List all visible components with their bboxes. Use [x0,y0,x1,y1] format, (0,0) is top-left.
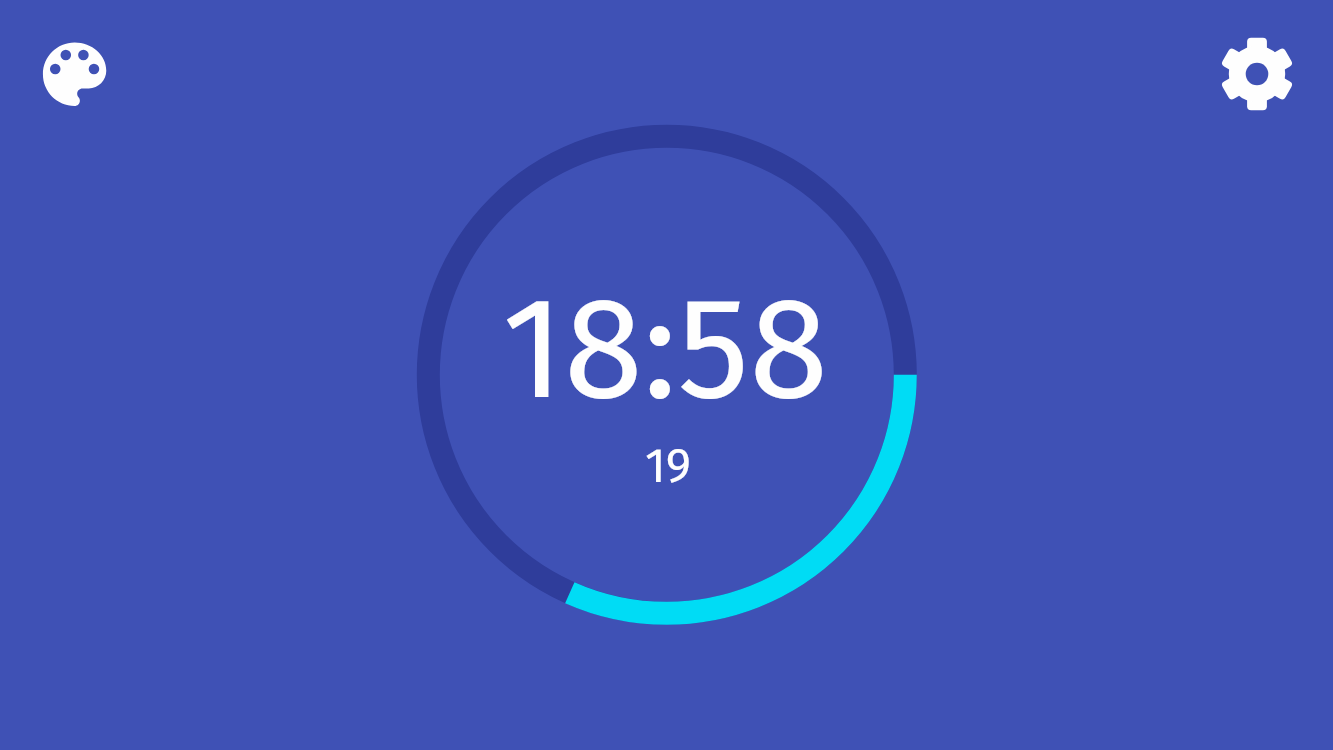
button[interactable] [25,25,125,125]
staticText: 18:58 [502,263,829,435]
staticText: 19 [645,437,691,495]
button[interactable] [1207,24,1307,124]
